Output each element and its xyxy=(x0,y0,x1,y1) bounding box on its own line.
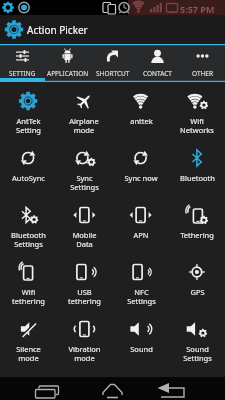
button[interactable]: USB tethering xyxy=(56,257,112,314)
button[interactable]: Tethering xyxy=(169,200,225,257)
staticText: OTHER xyxy=(192,69,213,78)
staticText: Airplane mode xyxy=(69,116,99,136)
button[interactable]: Sync Settings xyxy=(56,143,112,200)
staticText: Action Picker xyxy=(27,23,88,37)
staticText: USB tethering xyxy=(68,287,101,307)
button[interactable]: Sound Settings xyxy=(169,314,225,371)
button[interactable]: Airplane mode xyxy=(56,86,112,143)
staticText: Sync now xyxy=(124,173,158,183)
button[interactable]: SETTING xyxy=(0,44,45,82)
button[interactable]: anttek xyxy=(113,86,169,143)
staticText: APN xyxy=(133,230,149,240)
button[interactable]: Wifi Networks xyxy=(169,86,225,143)
button[interactable]: Mobile Data xyxy=(56,200,112,257)
button[interactable]: Sync now xyxy=(113,143,169,200)
button[interactable]: Bluetooth xyxy=(169,143,225,200)
staticText: SHORTCUT xyxy=(96,69,130,78)
staticText: Bluetooth xyxy=(180,173,215,183)
button[interactable]: SHORTCUT xyxy=(90,44,135,82)
staticText: Sound Settings xyxy=(183,344,212,364)
staticText: NFC Settings xyxy=(127,287,156,307)
button[interactable] xyxy=(148,377,198,400)
button[interactable] xyxy=(88,377,138,400)
button[interactable]: AntTek Setting xyxy=(0,86,56,143)
staticText: Sound xyxy=(130,344,153,354)
staticText: Wifi Networks xyxy=(180,116,214,136)
button[interactable]: Vibration mode xyxy=(56,314,112,371)
staticText: AntTek Setting xyxy=(16,116,41,136)
staticText: AutoSync xyxy=(12,173,45,183)
staticText: CONTACT xyxy=(143,69,172,78)
staticText: anttek xyxy=(130,116,153,126)
staticText: Tethering xyxy=(180,230,214,240)
button[interactable]: Wifi tethering xyxy=(0,257,56,314)
button[interactable]: APN xyxy=(113,200,169,257)
staticText: 5:57 PM xyxy=(180,3,215,15)
button[interactable]: Sound xyxy=(113,314,169,371)
staticText: SETTING xyxy=(9,69,36,78)
staticText: Wifi tethering xyxy=(12,287,45,307)
staticText: Bluetooth Settings xyxy=(11,230,46,250)
staticText: Silence mode xyxy=(16,344,41,364)
button[interactable]: CONTACT xyxy=(135,44,180,82)
staticText: APPLICATION xyxy=(47,69,89,78)
button[interactable]: NFC Settings xyxy=(113,257,169,314)
button[interactable]: GPS xyxy=(169,257,225,314)
button[interactable]: APPLICATION xyxy=(45,44,90,82)
staticText: Mobile Data xyxy=(72,230,97,250)
button[interactable]: Bluetooth Settings xyxy=(0,200,56,257)
staticText: GPS xyxy=(190,287,205,297)
staticText: Sync Settings xyxy=(70,173,99,193)
button[interactable]: Silence mode xyxy=(0,314,56,371)
button[interactable]: AutoSync xyxy=(0,143,56,200)
staticText: Vibration mode xyxy=(68,344,101,364)
button[interactable]: OTHER xyxy=(180,44,225,82)
button[interactable] xyxy=(23,377,73,400)
